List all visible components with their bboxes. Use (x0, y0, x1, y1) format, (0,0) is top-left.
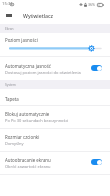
staticText: Rozmiar czcionki (5, 134, 40, 140)
button[interactable]: Rozmiar czcionki (0, 129, 110, 151)
button[interactable]: Tapeta (0, 89, 110, 105)
staticText: Dostosuj poziom jasności do oświetlenia (5, 70, 81, 75)
button[interactable]: Toggle Autoobracanie ekranu (91, 159, 102, 165)
staticText: Poziom jasności (5, 37, 38, 43)
button[interactable]: Blokuj automatycznie (0, 106, 110, 128)
staticText: Domyślny (5, 141, 24, 146)
button[interactable]: Menu (2, 9, 15, 22)
button[interactable]: Poziom jasności (0, 33, 110, 56)
staticText: Ekran (5, 27, 14, 31)
button[interactable]: Automatyczna jasność (0, 57, 110, 80)
staticText: Po Po 30 sekundach bezczynności (5, 118, 69, 123)
staticText: System (5, 83, 16, 87)
staticText: Wyświetlacz (23, 12, 54, 19)
button[interactable]: Autoobracanie ekranu (0, 152, 110, 174)
button[interactable]: Toggle Automatyczna jasność (91, 65, 102, 71)
staticText: Autoobracanie ekranu (5, 157, 51, 163)
staticText: Blokuj automatycznie (5, 111, 50, 117)
staticText: Automatyczna jasność (5, 63, 51, 69)
staticText: Tapeta (5, 96, 19, 102)
staticText: 15:31 (2, 1, 13, 7)
staticText: 36% (88, 2, 96, 7)
staticText: Obróć zawartość ekranu (5, 164, 51, 169)
